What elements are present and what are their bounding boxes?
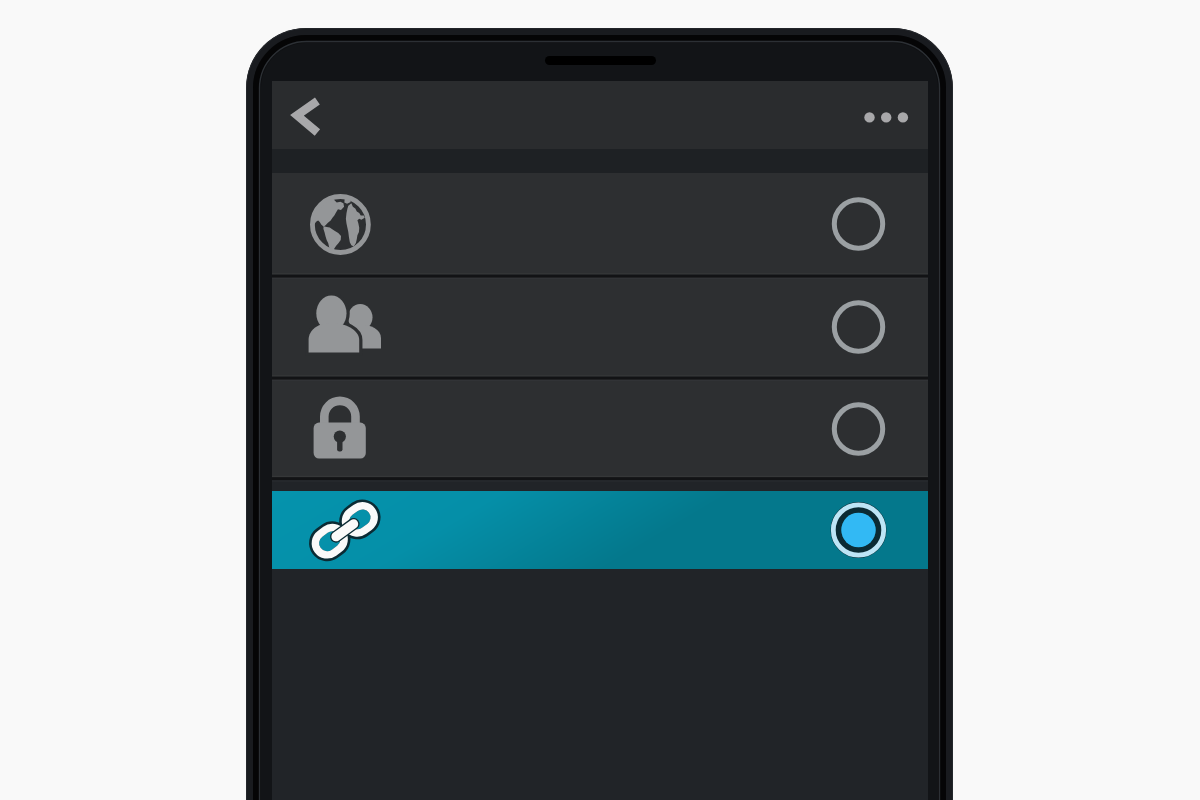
button[interactable]: Anyone with the link, selected (272, 491, 928, 569)
button[interactable]: Friends (272, 276, 928, 378)
button[interactable]: Private (272, 378, 928, 480)
button[interactable]: More options (854, 85, 916, 145)
button[interactable]: Public (272, 173, 928, 275)
button[interactable]: Back (284, 85, 344, 145)
